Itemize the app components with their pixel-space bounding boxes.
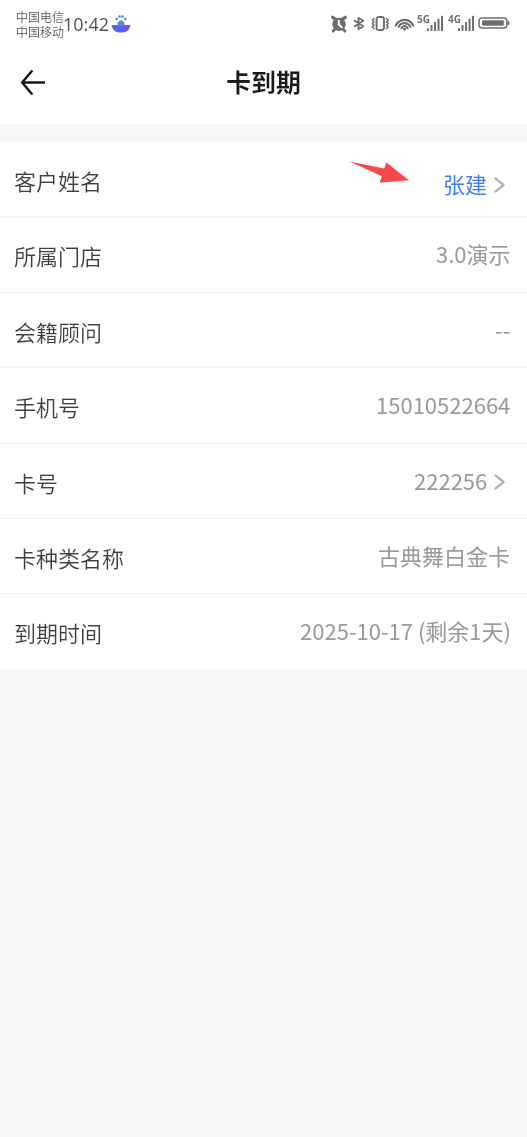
button[interactable]: Back (9, 58, 57, 106)
staticText: 古典舞白金卡 (378, 539, 511, 571)
staticText: 3.0演示 (436, 237, 511, 269)
staticText: 5G (417, 12, 430, 26)
staticText: 10:42 (63, 12, 110, 37)
button[interactable]: 卡种类名称 (0, 519, 527, 594)
staticText: 中国移动 (16, 23, 65, 40)
staticText: 所属门店 (14, 239, 103, 271)
staticText: 卡号 (14, 466, 59, 498)
staticText: 客户姓名 (14, 164, 103, 196)
staticText: 会籍顾问 (14, 315, 103, 347)
staticText: 222256 (414, 464, 488, 496)
staticText: 张建 (443, 167, 488, 199)
button[interactable]: 会籍顾问 (0, 293, 527, 368)
button[interactable]: 客户姓名 (0, 142, 527, 217)
button[interactable]: 所属门店 (0, 217, 527, 293)
staticText: 中国电信 (16, 8, 65, 25)
staticText: 卡到期 (226, 63, 302, 99)
button[interactable]: 手机号 (0, 368, 527, 444)
staticText: 2025-10-17 (剩余1天) (300, 614, 511, 646)
staticText: 手机号 (14, 390, 81, 422)
button[interactable]: 到期时间 (0, 594, 527, 670)
staticText: -- (495, 313, 511, 345)
staticText: 卡种类名称 (14, 541, 125, 573)
staticText: 15010522664 (376, 388, 511, 420)
button[interactable]: 卡号 (0, 444, 527, 519)
staticText: 4G (448, 12, 461, 26)
staticText: 到期时间 (14, 616, 103, 648)
